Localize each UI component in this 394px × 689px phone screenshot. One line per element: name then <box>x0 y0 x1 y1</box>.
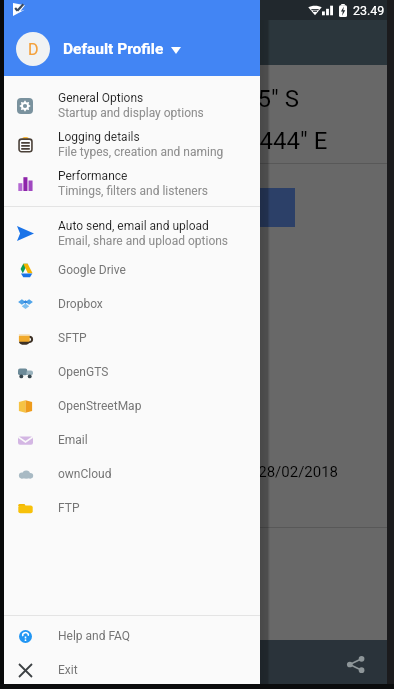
staticText: SFTP <box>58 331 87 345</box>
staticText: Google Drive <box>58 263 126 277</box>
staticText: Email <box>58 433 88 447</box>
staticText: 28° 3' 444" E <box>194 127 328 155</box>
staticText: 11° 22' 35" S <box>165 85 299 113</box>
staticText: Exit <box>58 663 78 677</box>
button[interactable]: OpenGTS <box>0 355 260 389</box>
staticText: OpenStreetMap <box>58 399 142 413</box>
staticText: General Options <box>58 91 144 105</box>
staticText: OpenGTS <box>58 365 109 379</box>
button[interactable]: SFTP <box>0 321 260 355</box>
button[interactable]: Help and FAQ <box>0 619 260 653</box>
button[interactable]: ownCloud <box>0 457 260 491</box>
staticText: Startup and display options <box>58 106 204 120</box>
button[interactable]: General Options <box>0 86 260 125</box>
staticText: Date: 28/02/2018 <box>220 463 339 481</box>
staticText: Performance <box>58 169 128 183</box>
staticText: Auto send, email and upload <box>58 219 209 233</box>
button[interactable]: Google Drive <box>0 253 260 287</box>
staticText: Default Profile <box>63 40 164 58</box>
button[interactable]: Performance <box>0 164 260 203</box>
button[interactable]: Auto send, email and upload <box>0 214 260 253</box>
staticText: Email, share and upload options <box>58 234 229 248</box>
button[interactable]: OpenStreetMap <box>0 389 260 423</box>
button[interactable]: Share <box>346 655 365 674</box>
staticText: 23.49 <box>353 3 385 18</box>
staticText: Logging details <box>58 130 140 144</box>
staticText: D <box>28 40 39 59</box>
button[interactable]: Email <box>0 423 260 457</box>
staticText: Help and FAQ <box>58 629 131 643</box>
staticText: ownCloud <box>58 467 112 481</box>
button[interactable]: Exit <box>0 653 260 687</box>
button[interactable]: Dropbox <box>0 287 260 321</box>
button[interactable]: FTP <box>0 491 260 525</box>
staticText: File types, creation and naming <box>58 145 224 159</box>
staticText: Dropbox <box>58 297 103 311</box>
button[interactable]: Logging details <box>0 125 260 164</box>
staticText: FTP <box>58 501 80 515</box>
staticText: Timings, filters and listeners <box>58 184 208 198</box>
